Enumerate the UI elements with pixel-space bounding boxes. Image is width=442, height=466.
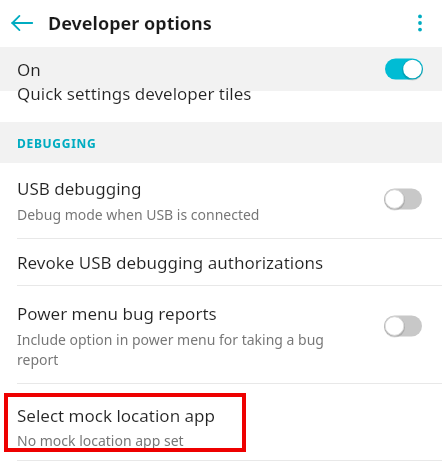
button[interactable]: Power menu bug reports: [0, 286, 442, 383]
button[interactable]: USB debugging: [0, 163, 442, 238]
staticText: Revoke USB debugging authorizations: [17, 251, 324, 274]
button[interactable]: Quick settings developer tiles: [0, 91, 442, 115]
button[interactable]: Toggle, off: [382, 187, 424, 211]
staticText: Quick settings developer tiles: [17, 82, 252, 105]
staticText: No mock location app set: [17, 431, 184, 450]
button[interactable]: More options: [404, 7, 436, 39]
staticText: On: [17, 58, 41, 81]
staticText: USB debugging: [17, 177, 142, 200]
staticText: Select mock location app: [17, 404, 215, 427]
staticText: Debug mode when USB is connected: [17, 205, 260, 224]
button[interactable]: Back: [6, 7, 38, 39]
button[interactable]: Developer options toggle, on: [383, 57, 425, 81]
button[interactable]: Toggle, off: [382, 314, 424, 338]
button[interactable]: On: [0, 47, 442, 91]
button[interactable]: Revoke USB debugging authorizations: [0, 239, 442, 285]
staticText: Power menu bug reports: [17, 302, 217, 325]
staticText: Developer options: [48, 11, 212, 36]
staticText: Include option in power menu for taking …: [17, 330, 347, 369]
button[interactable]: Select mock location app: [4, 393, 246, 452]
staticText: DEBUGGING: [17, 135, 97, 151]
